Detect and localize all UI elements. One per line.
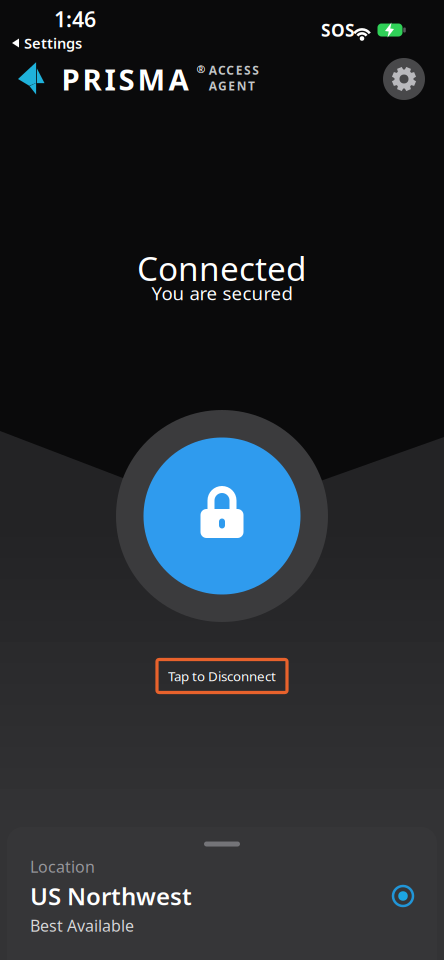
staticText: Connected (137, 246, 307, 290)
button[interactable]: Settings (383, 58, 425, 100)
staticText: US Northwest (30, 880, 192, 912)
staticText: AGENT (209, 78, 255, 94)
staticText: Best Available (30, 915, 134, 936)
button[interactable]: Disconnect (116, 410, 328, 622)
button[interactable]: Location (0, 861, 444, 931)
staticText: ® (196, 62, 205, 76)
staticText: SOS (321, 18, 355, 41)
staticText: 1:46 (54, 5, 96, 33)
staticText: Tap to Disconnect (168, 667, 276, 685)
staticText: You are secured (151, 281, 292, 305)
staticText: Settings (24, 33, 82, 53)
staticText: PRISMA (61, 59, 188, 98)
staticText: ACCESS (209, 62, 259, 78)
staticText: Location (30, 856, 95, 877)
button[interactable]: Back to Settings (12, 33, 82, 53)
button[interactable]: Tap to Disconnect (157, 659, 287, 692)
